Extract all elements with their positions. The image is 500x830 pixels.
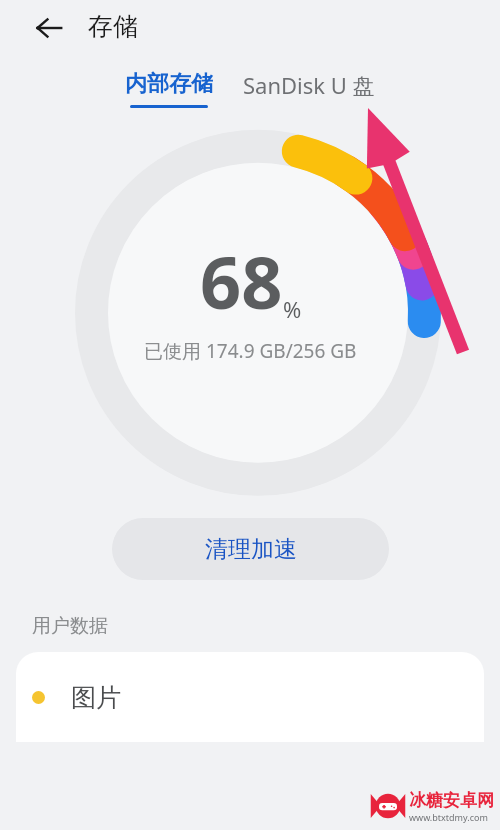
staticText: 清理加速 — [205, 535, 297, 564]
staticText: 存储 — [88, 11, 138, 42]
staticText: 用户数据 — [32, 614, 108, 638]
staticText: www.btxtdmy.com — [409, 811, 488, 823]
staticText: 冰糖安卓网 — [409, 790, 494, 811]
button[interactable]: 图片 — [16, 652, 484, 742]
staticText: 内部存储 — [125, 70, 213, 98]
staticText: % — [283, 294, 302, 324]
button[interactable]: 清理加速 — [112, 518, 389, 580]
button[interactable]: Back — [28, 7, 70, 49]
staticText: 68 — [200, 232, 283, 330]
staticText: 图片 — [71, 682, 121, 713]
staticText: SanDisk U 盘 — [243, 70, 375, 100]
staticText: 已使用 174.9 GB/256 GB — [144, 338, 357, 364]
button[interactable]: 内部存储 — [121, 70, 217, 108]
button[interactable]: SanDisk U 盘 — [239, 70, 379, 100]
